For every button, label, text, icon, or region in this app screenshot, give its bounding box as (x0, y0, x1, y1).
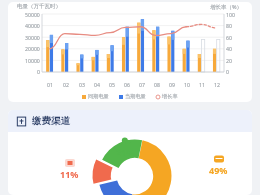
staticText: 10 (184, 81, 190, 88)
button[interactable]: 同期电量 (82, 93, 109, 100)
staticText: 03 (79, 81, 85, 88)
other: WeChat (121, 136, 131, 146)
staticText: 05 (109, 81, 115, 88)
button[interactable]: 增长率 (156, 93, 178, 100)
staticText: 电量（万千瓦时） (17, 3, 61, 10)
staticText: 08 (154, 81, 160, 88)
button[interactable]: Channel icon (8, 110, 252, 195)
staticText: 09 (169, 81, 175, 88)
other: Alipay (214, 154, 224, 164)
button[interactable]: 当期电量 (119, 93, 146, 100)
staticText: 01 (47, 81, 53, 88)
staticText: 40000 (25, 22, 40, 29)
other: Channel icon (16, 116, 27, 127)
staticText: 0 (226, 68, 229, 75)
staticText: 50000 (25, 11, 40, 18)
staticText: 49% (209, 164, 228, 176)
staticText: 0 (37, 68, 40, 75)
staticText: 100 (226, 11, 235, 18)
staticText: 缴费渠道 (32, 115, 70, 127)
staticText: 20000 (25, 45, 40, 52)
button[interactable]: 电量（万千瓦时） (8, 2, 252, 102)
staticText: 60 (226, 34, 232, 41)
button[interactable]: Bank counter (60, 158, 79, 180)
staticText: 04 (94, 81, 100, 88)
staticText: 增长率 (162, 93, 178, 100)
staticText: 80 (226, 22, 232, 29)
staticText: 11% (60, 168, 79, 180)
staticText: 20 (226, 57, 232, 64)
other: Bank counter (65, 158, 75, 168)
staticText: 增长率（%） (210, 3, 243, 11)
staticText: 当期电量 (125, 93, 146, 100)
staticText: 12 (214, 81, 220, 88)
staticText: 11 (199, 81, 205, 88)
staticText: 30000 (25, 34, 40, 41)
staticText: 02 (63, 81, 69, 88)
staticText: 10000 (25, 57, 40, 64)
button[interactable]: Alipay (209, 154, 228, 176)
button[interactable]: WeChat (116, 136, 135, 158)
staticText: 06 (124, 81, 130, 88)
staticText: 同期电量 (88, 93, 109, 100)
staticText: 40 (226, 45, 232, 52)
staticText: 07 (139, 81, 145, 88)
